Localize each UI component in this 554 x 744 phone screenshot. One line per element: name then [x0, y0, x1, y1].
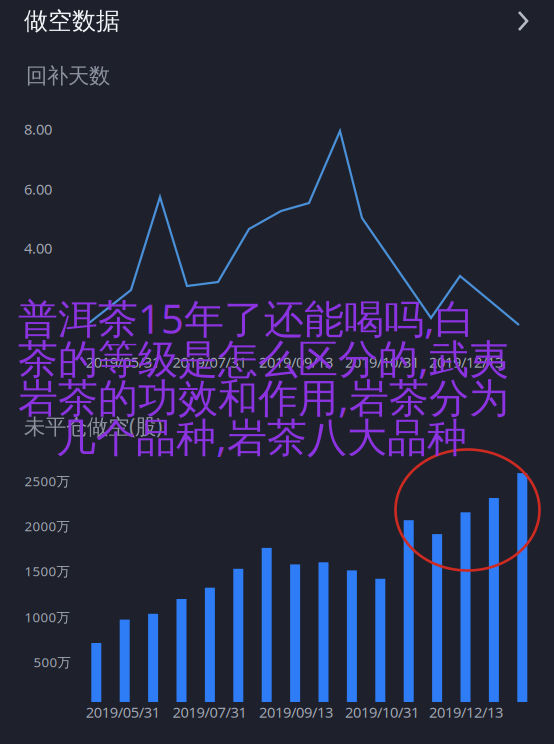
staticText: 6.00: [24, 179, 52, 199]
staticText: 1500万: [24, 562, 69, 580]
staticText: 2019/07/31: [173, 702, 247, 722]
staticText: 2500万: [24, 472, 69, 490]
staticText: 2019/05/31: [86, 352, 160, 372]
staticText: 未平仓做空(股): [24, 412, 162, 440]
staticText: 2019/12/13: [429, 702, 503, 722]
staticText: 岩茶的功效和作用,岩茶分为: [18, 370, 509, 423]
staticText: 2019/09/13: [259, 352, 333, 372]
staticText: 2019/12/13: [429, 352, 503, 372]
staticText: 2019/10/31: [345, 352, 419, 372]
staticText: 几个品种,岩茶八大品种: [56, 410, 467, 463]
staticText: 2019/10/31: [345, 702, 419, 722]
staticText: 2000万: [24, 517, 69, 535]
staticText: 茶的等级是怎么区分的,武夷: [18, 332, 509, 385]
staticText: 2019/09/13: [259, 702, 333, 722]
staticText: 2019/05/31: [86, 702, 160, 722]
staticText: 2019/07/31: [173, 352, 247, 372]
staticText: 做空数据: [24, 6, 120, 36]
staticText: 8.00: [24, 119, 52, 139]
staticText: 4.00: [24, 238, 52, 258]
staticText: 普洱茶15年了还能喝吗,白: [18, 292, 475, 345]
staticText: 回补天数: [26, 63, 110, 89]
staticText: 1000万: [24, 608, 69, 626]
button[interactable]: 做空数据: [0, 0, 554, 42]
staticText: 500万: [33, 653, 70, 671]
